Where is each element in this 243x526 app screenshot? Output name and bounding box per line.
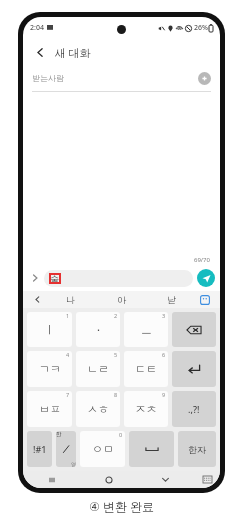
button[interactable]: ㄱㅋ: [27, 351, 72, 387]
button[interactable]: !#1: [27, 431, 52, 467]
button[interactable]: enter: [172, 351, 216, 387]
staticText: 받는사람: [32, 73, 64, 83]
staticText: 0: [119, 431, 123, 438]
staticText: 4: [66, 351, 70, 358]
button[interactable]: ㅡ: [124, 312, 168, 347]
button[interactable]: 나: [45, 291, 96, 308]
staticText: 1: [66, 312, 70, 319]
staticText: 7: [66, 391, 70, 398]
staticText: ㄴㄹ: [87, 362, 109, 376]
button[interactable]: Hide keyboard: [137, 471, 194, 488]
staticText: .,?!: [188, 403, 200, 415]
staticText: 아: [117, 294, 126, 305]
button[interactable]: 아: [96, 291, 146, 308]
staticText: 6: [162, 351, 166, 358]
staticText: ㅣ: [44, 323, 55, 337]
button[interactable]: 술: [44, 270, 193, 287]
button[interactable]: space: [129, 431, 174, 467]
button[interactable]: Add recipient: [198, 72, 211, 85]
staticText: ④ 변환 완료: [89, 498, 154, 514]
staticText: 2:04: [30, 23, 44, 33]
button[interactable]: ㅇㅁ: [80, 431, 125, 467]
staticText: ·: [97, 322, 100, 337]
staticText: 나: [66, 294, 75, 305]
staticText: ㅇㅁ: [92, 442, 114, 456]
staticText: 한: [56, 431, 62, 438]
staticText: ㅈㅊ: [135, 402, 157, 416]
staticText: ㄷㅌ: [135, 362, 157, 376]
staticText: 2: [114, 312, 118, 319]
staticText: ㅂㅍ: [39, 402, 61, 416]
staticText: !#1: [33, 443, 47, 455]
button[interactable]: Back: [31, 43, 49, 61]
button[interactable]: Recents: [23, 471, 80, 488]
button[interactable]: Previous suggestions: [29, 291, 45, 308]
button[interactable]: ㅅㅎ: [76, 391, 120, 427]
staticText: ㄱㅋ: [39, 362, 61, 376]
button[interactable]: ·: [76, 312, 120, 347]
staticText: ㅅㅎ: [87, 402, 109, 416]
button[interactable]: back: [172, 312, 216, 347]
button[interactable]: 한자: [178, 431, 216, 467]
button[interactable]: ㅈㅊ: [124, 391, 168, 427]
button[interactable]: ㄴㄹ: [76, 351, 120, 387]
staticText: 영: [71, 461, 76, 467]
button[interactable]: ㄷㅌ: [124, 351, 168, 387]
staticText: 새 대화: [55, 45, 91, 60]
button[interactable]: 낟: [146, 291, 196, 308]
staticText: 26%: [194, 23, 208, 33]
button[interactable]: hanyoung: [56, 431, 76, 467]
staticText: 69/70: [194, 256, 210, 264]
button[interactable]: Home: [80, 471, 137, 488]
button[interactable]: Send: [197, 269, 215, 287]
staticText: 9: [162, 391, 166, 398]
staticText: 5: [114, 351, 118, 358]
staticText: 술: [50, 273, 59, 284]
staticText: 3: [162, 312, 166, 319]
staticText: 낟: [167, 294, 176, 305]
button[interactable]: .,?!: [172, 391, 216, 427]
button[interactable]: ㅣ: [27, 312, 72, 347]
staticText: 한자: [188, 444, 206, 455]
button[interactable]: Stickers: [196, 291, 214, 308]
button[interactable]: Keyboard settings: [194, 471, 220, 488]
button[interactable]: Expand: [28, 271, 42, 285]
staticText: 8: [114, 391, 118, 398]
staticText: ㅡ: [141, 323, 152, 337]
button[interactable]: ㅂㅍ: [27, 391, 72, 427]
